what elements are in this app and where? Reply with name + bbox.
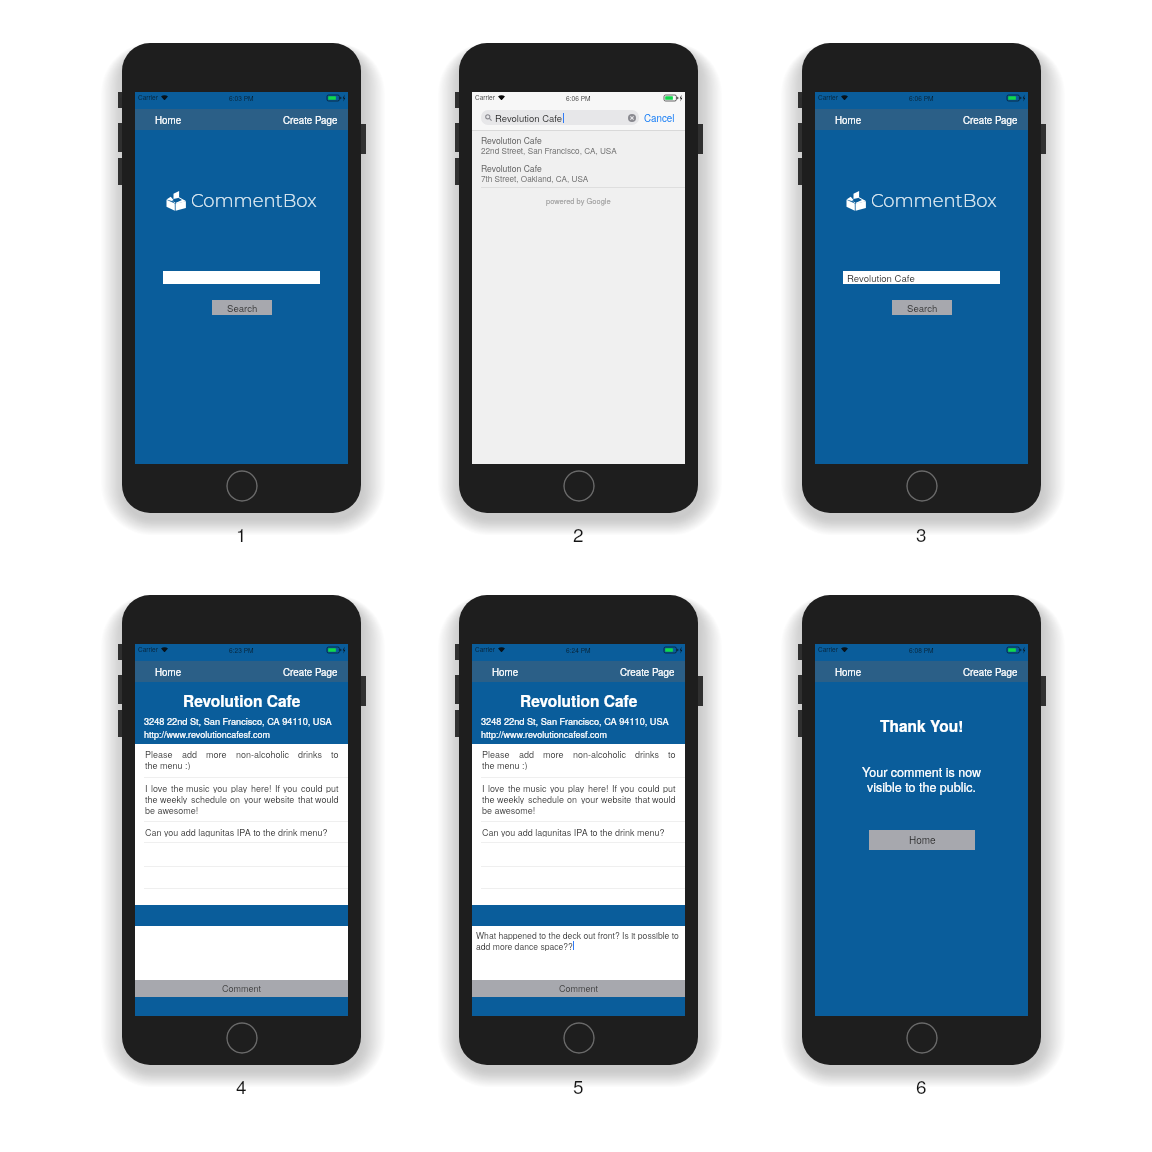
staticText: more [206,748,227,759]
staticText: Please [145,748,173,759]
button[interactable]: I [135,778,348,822]
button[interactable]: Home [815,109,872,130]
staticText: 7th Street, Oakland, CA, USA [481,173,589,185]
staticText: 6:23 PM [229,645,254,654]
button[interactable]: Comment [472,980,685,997]
staticText: Cancel [644,111,675,125]
staticText: 4 [236,1072,247,1099]
staticText: Carrier [475,93,495,102]
staticText: 3248 22nd St, San Francisco, CA 94110, U… [481,714,669,727]
button[interactable]: Home button [563,1022,595,1054]
button[interactable]: Revolution Cafe [481,110,639,125]
staticText: 6 [916,1072,927,1099]
staticText: Thank You! [880,715,964,737]
button[interactable]: Search [892,300,952,315]
button[interactable]: Revolution Cafe [472,159,685,187]
staticText: to [668,748,676,759]
button[interactable]: Home button [563,470,595,502]
button[interactable]: Home [869,830,975,850]
staticText: your [581,793,599,804]
staticText: http://www.revolutioncafesf.com [481,728,608,741]
staticText: Carrier [138,93,158,102]
staticText: 2 [573,520,584,547]
staticText: the [171,782,184,793]
button[interactable]: Home [815,661,872,682]
staticText: weekly [160,793,188,804]
button[interactable]: Create Page [273,109,348,130]
staticText: Create Page [963,113,1018,126]
button[interactable]: Cancel [644,108,675,128]
button[interactable]: Home [135,661,192,682]
button[interactable]: Can you add lagunitas IPA to the drink m… [472,822,685,843]
button[interactable]: Home [472,661,529,682]
staticText: would [315,793,339,804]
staticText: Home [835,665,862,678]
button[interactable]: Can you add lagunitas IPA to the drink m… [135,822,348,843]
staticText: be awesome! [145,804,199,815]
button[interactable]: I [472,778,685,822]
staticText: on [567,793,578,804]
staticText: add [519,748,535,759]
button[interactable]: Create Page [610,661,685,682]
staticText: CommentBox [191,190,317,212]
staticText: Can you add lagunitas IPA to the drink m… [145,826,328,837]
staticText: Carrier [138,645,158,654]
button[interactable]: Create Page [273,661,348,682]
staticText: Revolution Cafe [183,690,301,712]
button[interactable]: Comment [135,980,348,997]
staticText: Home [492,665,519,678]
staticText: more [543,748,564,759]
staticText: you [213,782,228,793]
staticText: Search [907,301,938,315]
staticText: you [550,782,565,793]
staticText: 3 [916,520,927,547]
staticText: the menu :) [145,759,191,770]
staticText: your [244,793,262,804]
staticText: non-alcoholic [573,748,627,759]
button[interactable]: What happened to the deck out front? Is … [472,926,685,980]
button[interactable]: Home button [906,1022,938,1054]
staticText: would [652,793,676,804]
staticText: Create Page [283,113,338,126]
staticText: CommentBox [871,190,997,212]
staticText: Revolution Cafe [847,271,915,284]
staticText: Home [909,833,936,847]
button[interactable]: Home button [906,470,938,502]
button[interactable]: Revolution Cafe [472,131,685,159]
button[interactable]: Home button [226,470,258,502]
staticText: the [508,782,521,793]
staticText: 6:06 PM [566,93,591,102]
staticText: What happened to the deck out front? Is … [476,929,679,940]
staticText: 5 [573,1072,584,1099]
staticText: the menu :) [482,759,528,770]
staticText: If [612,782,618,793]
staticText: could [301,782,323,793]
staticText: play [568,782,585,793]
button[interactable]: Create Page [953,109,1028,130]
staticText: the [482,793,495,804]
button[interactable]: Create Page [953,661,1028,682]
staticText: Search [227,301,258,315]
staticText: you [283,782,298,793]
button[interactable]: Please [135,744,348,778]
staticText: drinks [635,748,659,759]
button[interactable]: Home [135,109,192,130]
staticText: add more dance space?? [476,940,573,951]
staticText: could [638,782,660,793]
staticText: love [151,782,168,793]
staticText: Can you add lagunitas IPA to the drink m… [482,826,665,837]
staticText: I [482,782,485,793]
button[interactable]: Revolution Cafe [843,271,1000,284]
button[interactable]: Search [212,300,272,315]
button[interactable]: Home button [226,1022,258,1054]
button[interactable]: Please [472,744,685,778]
staticText: 3248 22nd St, San Francisco, CA 94110, U… [144,714,332,727]
staticText: music [186,782,210,793]
staticText: to [331,748,339,759]
staticText: play [231,782,248,793]
staticText: weekly [497,793,525,804]
staticText: on [230,793,241,804]
staticText: put [326,782,339,793]
